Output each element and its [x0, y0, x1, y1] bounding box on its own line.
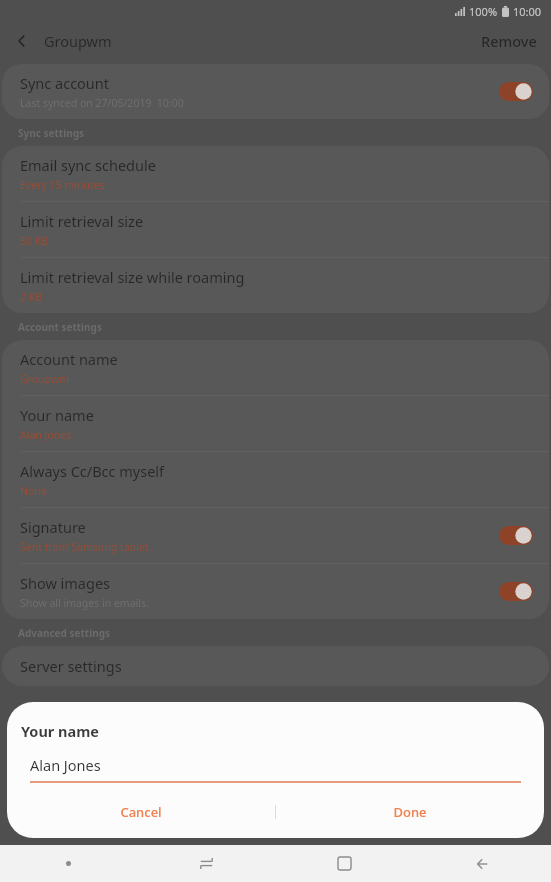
staticText: Limit retrieval size while roaming — [20, 267, 245, 287]
staticText: 100% — [469, 4, 498, 19]
button[interactable]: Hide navigation bar — [0, 845, 137, 882]
staticText: Groupwm — [44, 31, 112, 51]
button[interactable]: Signature — [2, 508, 549, 563]
staticText: Groupwm — [20, 372, 69, 386]
button[interactable]: Server settings — [2, 646, 549, 686]
button[interactable]: Limit retrieval size while roaming — [2, 258, 549, 313]
staticText: 50 KB — [20, 234, 49, 248]
staticText: Server settings — [20, 656, 122, 676]
staticText: 2 KB — [20, 290, 43, 304]
staticText: Done — [393, 803, 427, 821]
staticText: Limit retrieval size — [20, 211, 144, 231]
button[interactable]: Email sync schedule — [2, 146, 549, 201]
staticText: Alan Jones — [30, 755, 101, 775]
staticText: Last synced on 27/05/2019 10:00 — [20, 96, 184, 110]
staticText: 10:00 — [513, 4, 542, 19]
button[interactable]: Home — [275, 845, 413, 882]
staticText: Sent from Samsung tablet. — [20, 540, 152, 554]
staticText: Your name — [20, 405, 94, 425]
button[interactable]: Toggle Show images — [499, 582, 533, 601]
button[interactable]: Back — [413, 845, 551, 882]
staticText: Advanced settings — [18, 626, 110, 640]
staticText: Show images — [20, 573, 111, 593]
button[interactable]: Navigate up — [0, 22, 44, 60]
staticText: Always Cc/Bcc myself — [20, 461, 165, 481]
staticText: Show all images in emails. — [20, 596, 149, 610]
staticText: Remove — [481, 31, 537, 51]
button[interactable]: Remove — [467, 23, 551, 59]
button[interactable]: Your name — [2, 396, 549, 451]
staticText: Account name — [20, 349, 118, 369]
button[interactable]: Show images — [2, 564, 549, 619]
button[interactable]: Always Cc/Bcc myself — [2, 452, 549, 507]
button[interactable]: Cancel — [7, 795, 275, 829]
button[interactable]: Toggle Sync account — [499, 82, 533, 101]
button[interactable]: Toggle Signature — [499, 526, 533, 545]
staticText: Alan Jones — [20, 428, 72, 442]
button[interactable]: Done — [276, 795, 544, 829]
button[interactable]: Limit retrieval size — [2, 202, 549, 257]
staticText: Cancel — [120, 803, 162, 821]
button[interactable]: Account name — [2, 340, 549, 395]
staticText: Account settings — [18, 320, 102, 334]
staticText: Your name — [21, 721, 99, 741]
staticText: Signature — [20, 517, 86, 537]
staticText: Sync settings — [18, 126, 84, 140]
button[interactable]: Sync account — [2, 64, 549, 119]
staticText: None — [20, 484, 47, 498]
staticText: Sync account — [20, 73, 110, 93]
button[interactable]: Recent apps — [137, 845, 275, 882]
staticText: Email sync schedule — [20, 155, 156, 175]
staticText: Every 15 minutes — [20, 178, 105, 192]
